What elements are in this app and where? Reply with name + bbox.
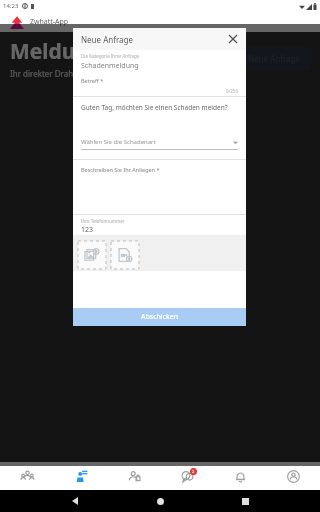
- button[interactable]: Schließen: [225, 31, 241, 47]
- button[interactable]: Profil: [108, 462, 161, 490]
- button[interactable]: Start: [0, 462, 54, 490]
- staticText: Abschicken: [141, 312, 178, 322]
- staticText: Guten Tag, möchten Sie einen Schaden mel…: [81, 103, 228, 112]
- staticText: 14:23: [3, 2, 19, 10]
- button[interactable]: Anfragen: [54, 462, 108, 490]
- staticText: Die Kategorie Ihrer Anfrage: [81, 53, 140, 59]
- staticText: Betreff *: [81, 77, 104, 84]
- button[interactable]: Nachrichten: [161, 462, 214, 490]
- staticText: Neue Anfrage: [81, 34, 133, 45]
- button[interactable]: Konto: [267, 462, 320, 490]
- staticText: 0/250: [226, 88, 238, 94]
- staticText: Ihr direkter Draht zu uns: [10, 68, 103, 79]
- staticText: Beschreiben Sie Ihr Anliegen *: [81, 166, 160, 173]
- button[interactable]: Neue Anfrage: [238, 47, 310, 70]
- staticText: Wählen Sie die Schadenart: [81, 138, 156, 146]
- staticText: 123: [81, 225, 94, 235]
- staticText: Meldungen: [10, 37, 129, 66]
- button[interactable]: Zurück: [67, 492, 85, 510]
- staticText: Neue Anfrage: [248, 53, 300, 64]
- button[interactable]: Anhang hinzufügen: [111, 241, 139, 269]
- button[interactable]: Übersicht: [236, 492, 254, 510]
- staticText: Ihre Telefonnummer: [81, 218, 125, 224]
- staticText: Schadenmeldung: [81, 61, 139, 71]
- button[interactable]: Benachrichtigungen: [214, 462, 267, 490]
- button[interactable]: Abschicken: [73, 308, 246, 326]
- button[interactable]: Anhang hinzufügen: [78, 241, 106, 269]
- staticText: 2: [192, 469, 195, 474]
- staticText: Zwhatt-App: [30, 17, 69, 27]
- button[interactable]: Startbildschirm: [151, 492, 169, 510]
